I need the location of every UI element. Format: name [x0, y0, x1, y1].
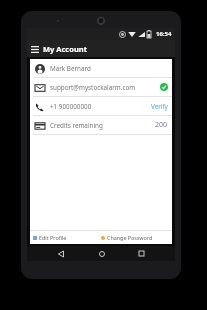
button[interactable]: Recent apps: [134, 246, 149, 261]
button[interactable]: Back: [53, 246, 68, 261]
button[interactable]: Change Password: [101, 231, 172, 244]
button[interactable]: +1 900000000: [30, 97, 172, 115]
button[interactable]: support@mystockalarm.com: [30, 78, 172, 96]
staticText: 200: [155, 120, 168, 130]
button[interactable]: Mark Bernard: [30, 59, 172, 77]
button[interactable]: Credits remaining: [30, 116, 172, 134]
staticText: Edit Profile: [39, 234, 67, 241]
button[interactable]: Home: [94, 246, 109, 261]
button[interactable]: Edit Profile: [30, 231, 101, 244]
staticText: Credits remaining: [50, 121, 155, 130]
staticText: Mark Bernard: [50, 64, 168, 73]
button[interactable]: Open navigation drawer: [27, 41, 43, 57]
staticText: Verify: [151, 102, 168, 111]
staticText: +1 900000000: [50, 102, 151, 111]
staticText: Change Password: [107, 234, 153, 241]
staticText: 16:54: [156, 30, 172, 38]
staticText: support@mystockalarm.com: [50, 83, 160, 92]
staticText: My Account: [43, 44, 87, 54]
